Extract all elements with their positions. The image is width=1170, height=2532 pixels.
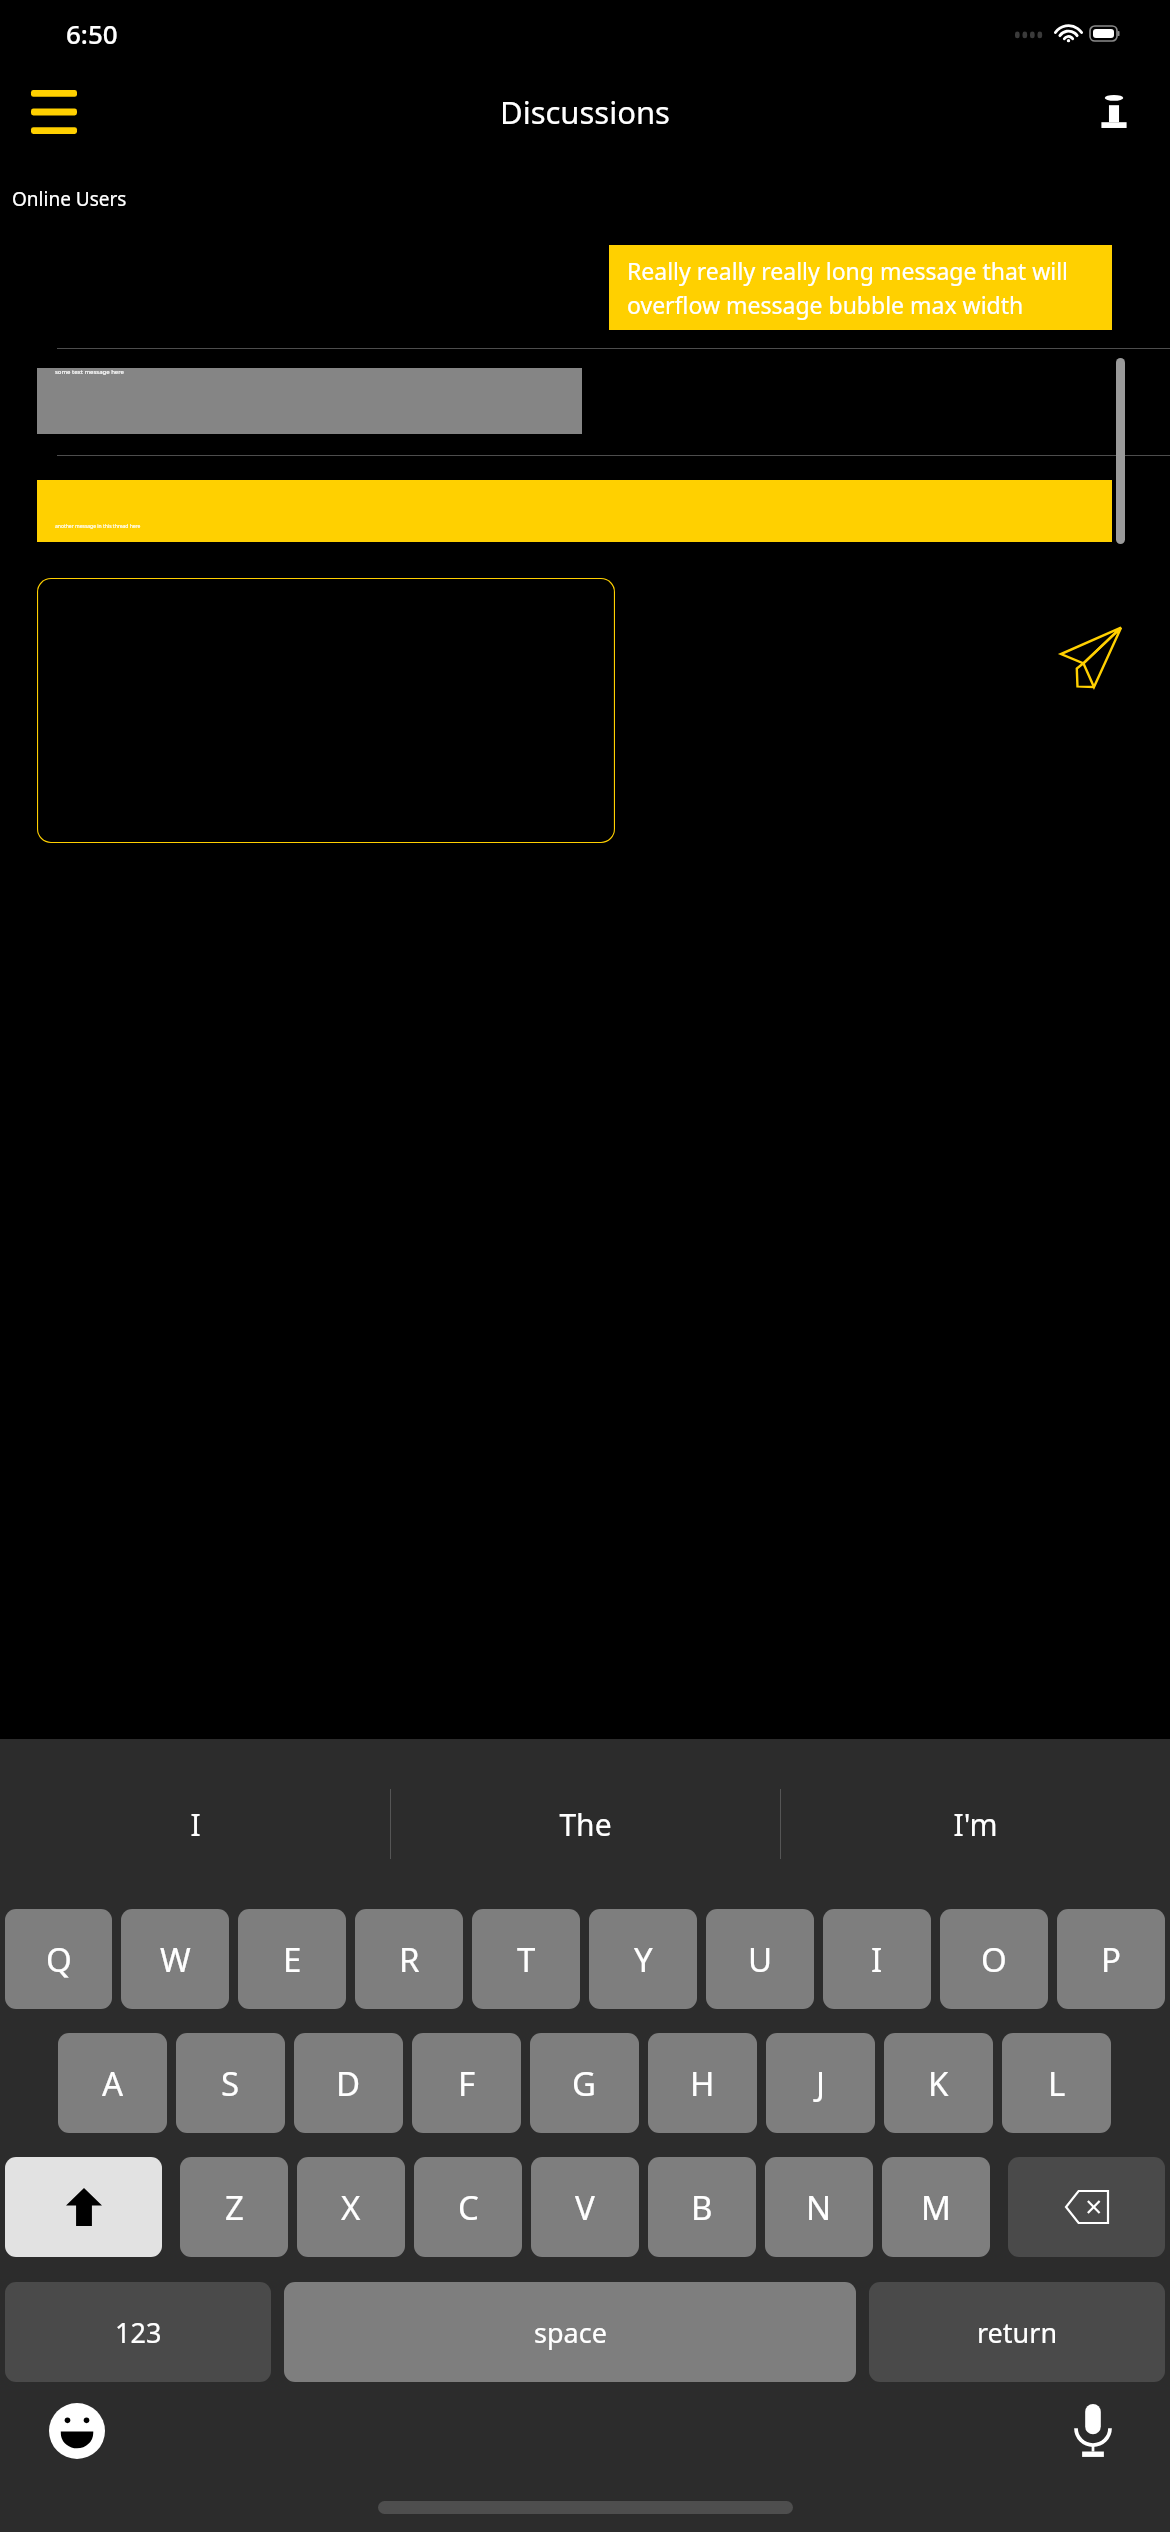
button[interactable]: Y — [589, 1909, 697, 2009]
button[interactable]: L — [1002, 2033, 1111, 2133]
staticText: C — [458, 2185, 479, 2230]
button[interactable]: V — [531, 2157, 639, 2257]
staticText: N — [806, 2185, 832, 2230]
staticText: I'm — [953, 1804, 998, 1845]
button[interactable]: I'm — [781, 1739, 1170, 1909]
button[interactable]: Shift — [5, 2157, 162, 2257]
staticText: W — [160, 1937, 191, 1982]
button[interactable]: some text message here — [37, 368, 582, 434]
button[interactable]: J — [766, 2033, 875, 2133]
button[interactable]: C — [414, 2157, 522, 2257]
button[interactable]: 123 — [5, 2282, 271, 2382]
staticText: The — [559, 1804, 612, 1845]
button[interactable]: O — [940, 1909, 1048, 2009]
staticText: R — [399, 1937, 420, 1982]
button[interactable]: I — [823, 1909, 931, 2009]
staticText: another message in this thread here — [55, 523, 141, 530]
button[interactable]: space — [284, 2282, 856, 2382]
staticText: K — [928, 2061, 949, 2106]
button[interactable]: Menu — [24, 82, 84, 142]
button[interactable]: A — [58, 2033, 167, 2133]
button[interactable]: E — [238, 1909, 346, 2009]
button[interactable]: Backspace — [1008, 2157, 1165, 2257]
button[interactable]: B — [648, 2157, 756, 2257]
staticText: 6:50 — [66, 16, 118, 51]
staticText: F — [458, 2061, 476, 2106]
button[interactable]: Really really really long message that w… — [609, 245, 1112, 330]
staticText: D — [336, 2061, 361, 2106]
button[interactable]: R — [355, 1909, 463, 2009]
button[interactable]: P — [1057, 1909, 1165, 2009]
staticText: M — [921, 2185, 951, 2230]
staticText: I — [190, 1804, 201, 1845]
button[interactable]: Z — [180, 2157, 288, 2257]
staticText: E — [283, 1937, 302, 1982]
staticText: Q — [46, 1937, 72, 1982]
staticText: X — [341, 2185, 361, 2230]
staticText: V — [575, 2185, 595, 2230]
staticText: Z — [225, 2185, 244, 2230]
staticText: B — [691, 2185, 713, 2230]
button[interactable]: Info — [1084, 82, 1144, 142]
button[interactable]: Dictation — [1062, 2400, 1124, 2462]
button[interactable]: another message in this thread here — [37, 480, 1112, 542]
staticText: L — [1048, 2061, 1066, 2106]
button[interactable]: G — [530, 2033, 639, 2133]
staticText: Y — [634, 1937, 653, 1982]
staticText: G — [572, 2061, 597, 2106]
button[interactable]: return — [869, 2282, 1165, 2382]
button[interactable]: I — [0, 1739, 390, 1909]
staticText: T — [517, 1937, 536, 1982]
staticText: space — [534, 2314, 607, 2351]
staticText: some text message here — [55, 368, 124, 376]
staticText: O — [981, 1937, 1007, 1982]
staticText: J — [816, 2061, 826, 2106]
button[interactable]: Q — [5, 1909, 112, 2009]
button[interactable]: S — [176, 2033, 285, 2133]
button[interactable]: Emoji — [46, 2400, 108, 2462]
staticText: S — [221, 2061, 240, 2106]
button[interactable]: M — [882, 2157, 990, 2257]
staticText: P — [1101, 1937, 1121, 1982]
button[interactable]: Send — [1048, 616, 1132, 700]
staticText: U — [748, 1937, 773, 1982]
button[interactable] — [37, 578, 615, 843]
staticText: 123 — [115, 2314, 162, 2351]
button[interactable]: W — [121, 1909, 229, 2009]
staticText: return — [977, 2314, 1058, 2351]
button[interactable]: D — [294, 2033, 403, 2133]
button[interactable]: N — [765, 2157, 873, 2257]
button[interactable]: F — [412, 2033, 521, 2133]
button[interactable]: X — [297, 2157, 405, 2257]
button[interactable]: T — [472, 1909, 580, 2009]
button[interactable]: The — [391, 1739, 780, 1909]
staticText: Really really really long message that w… — [627, 255, 1094, 320]
staticText: Discussions — [500, 91, 670, 133]
staticText: A — [102, 2061, 124, 2106]
button[interactable]: K — [884, 2033, 993, 2133]
button[interactable]: U — [706, 1909, 814, 2009]
button[interactable]: H — [648, 2033, 757, 2133]
staticText: H — [690, 2061, 715, 2106]
staticText: I — [871, 1937, 883, 1982]
staticText: Online Users — [12, 186, 127, 212]
